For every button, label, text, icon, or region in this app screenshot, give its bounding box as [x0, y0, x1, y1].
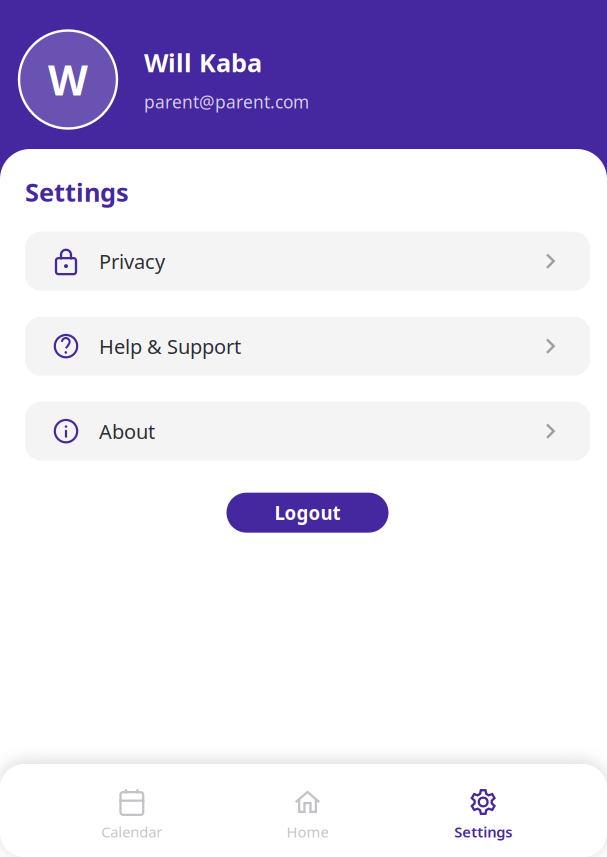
- staticText: Logout: [274, 500, 340, 525]
- staticText: Help & Support: [99, 333, 241, 359]
- staticText: Calendar: [101, 822, 162, 841]
- button[interactable]: Logout: [226, 493, 388, 533]
- button[interactable]: Privacy: [25, 232, 590, 291]
- staticText: W: [48, 52, 88, 107]
- button[interactable]: Help & Support: [25, 317, 590, 376]
- button[interactable]: Settings: [395, 788, 571, 841]
- button[interactable]: About: [25, 402, 590, 461]
- staticText: parent@parent.com: [144, 90, 309, 113]
- button[interactable]: Home: [220, 788, 395, 841]
- staticText: Settings: [454, 822, 512, 841]
- staticText: About: [99, 418, 155, 444]
- button[interactable]: Calendar: [44, 788, 220, 841]
- staticText: Privacy: [99, 248, 165, 274]
- staticText: Settings: [25, 175, 129, 209]
- staticText: Home: [286, 822, 328, 841]
- staticText: Will Kaba: [144, 46, 262, 79]
